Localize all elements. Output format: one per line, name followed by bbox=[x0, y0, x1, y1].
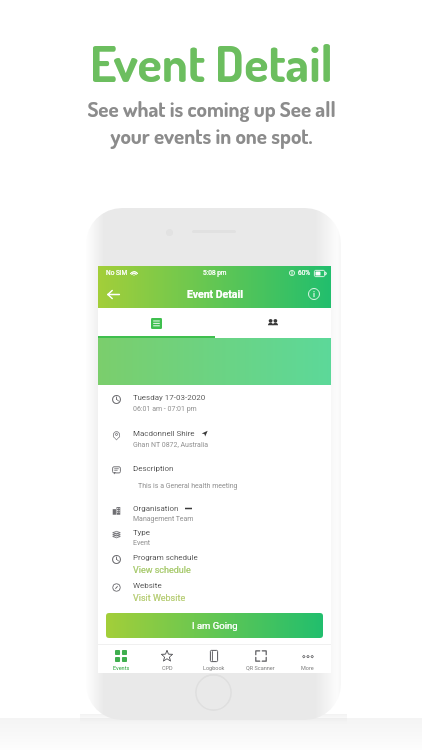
staticText: Event Detail bbox=[90, 31, 333, 94]
button[interactable]: CPD bbox=[144, 645, 190, 673]
button[interactable]: Logbook bbox=[190, 645, 237, 673]
button[interactable]: I am Going bbox=[106, 613, 323, 638]
staticText: 5:08 pm bbox=[203, 269, 227, 277]
staticText: This is a General health meeting bbox=[138, 482, 238, 490]
staticText: No SIM bbox=[106, 269, 128, 277]
staticText: Management Team bbox=[133, 515, 194, 523]
staticText: 06:01 am - 07:01 pm bbox=[133, 405, 197, 413]
staticText: Event bbox=[133, 539, 151, 547]
staticText: Event Detail bbox=[187, 288, 243, 300]
staticText: Ghan NT 0872, Australia bbox=[133, 441, 209, 449]
staticText: Macdonnell Shire bbox=[133, 429, 195, 438]
staticText: Logbook bbox=[203, 665, 225, 671]
staticText: Organisation bbox=[133, 504, 179, 513]
staticText: View schedule bbox=[133, 565, 191, 576]
staticText: Tuesday 17-03-2020 bbox=[133, 393, 206, 402]
staticText: Program schedule bbox=[133, 553, 198, 562]
button[interactable]: Details tab bbox=[98, 308, 214, 338]
staticText: Website bbox=[133, 581, 162, 590]
staticText: Events bbox=[113, 665, 130, 671]
button[interactable]: Attendees tab bbox=[214, 308, 331, 338]
button[interactable]: Information bbox=[303, 283, 325, 305]
staticText: CPD bbox=[162, 665, 173, 671]
staticText: Type bbox=[133, 528, 151, 537]
staticText: I am Going bbox=[192, 620, 238, 631]
button[interactable]: More bbox=[284, 645, 331, 673]
button[interactable]: Back bbox=[102, 283, 124, 305]
staticText: See what is coming up See all your event… bbox=[87, 95, 336, 149]
button[interactable]: QR Scanner bbox=[237, 645, 284, 673]
staticText: Visit Website bbox=[133, 593, 186, 604]
button[interactable]: Events bbox=[98, 645, 144, 673]
staticText: Description bbox=[133, 464, 174, 473]
staticText: QR Scanner bbox=[246, 665, 275, 671]
staticText: More bbox=[301, 665, 314, 671]
staticText: 60% bbox=[298, 269, 311, 277]
